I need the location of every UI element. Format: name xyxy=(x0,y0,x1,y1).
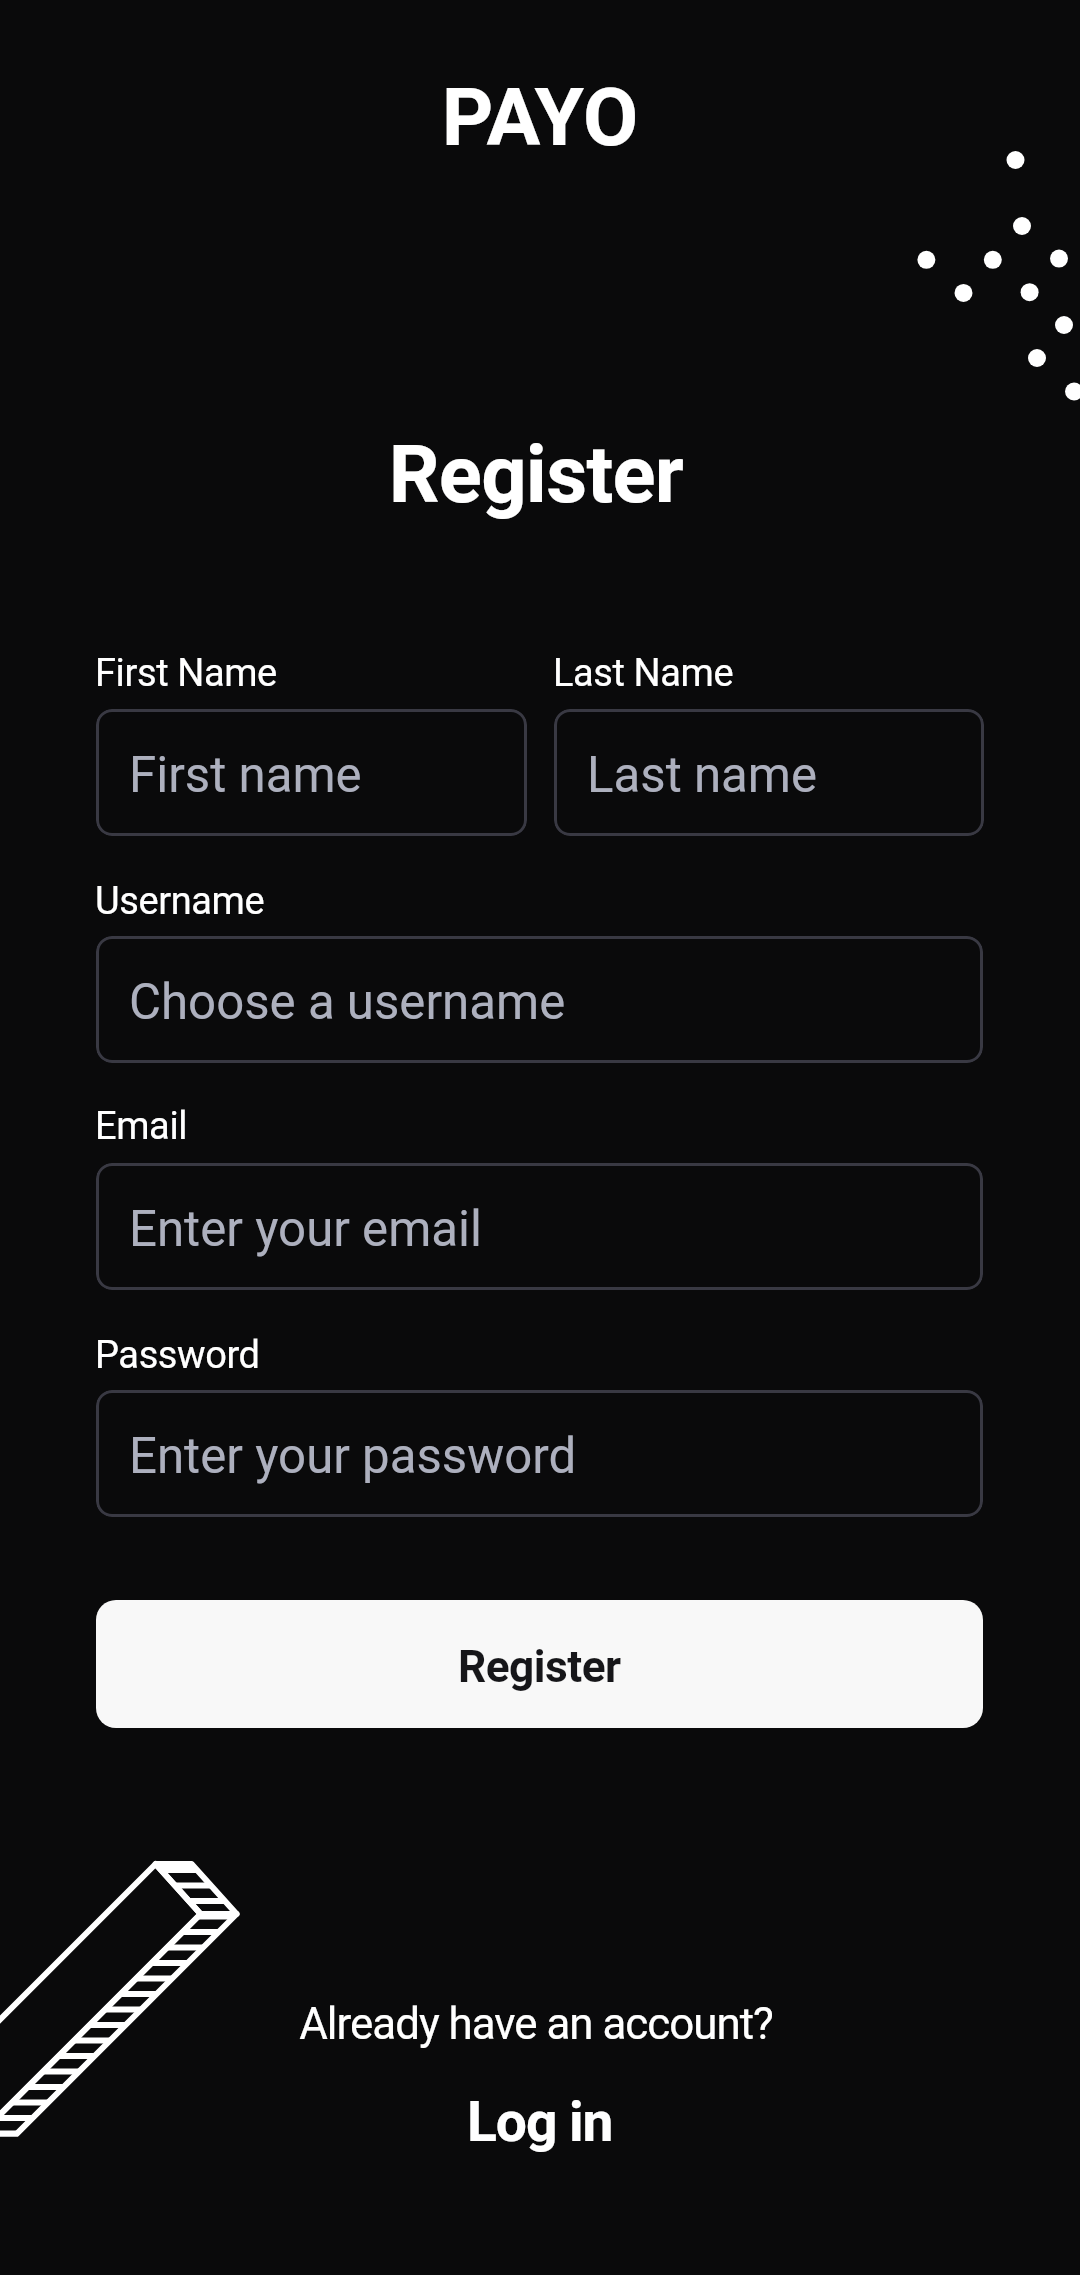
staticText: Enter your password xyxy=(129,1427,577,1485)
staticText: Last Name xyxy=(553,651,734,696)
staticText: Already have an account? xyxy=(0,1998,1076,2049)
button[interactable]: Choose a username xyxy=(96,936,983,1063)
button[interactable]: Enter your password xyxy=(96,1390,983,1517)
staticText: Last name xyxy=(587,746,818,804)
staticText: First name xyxy=(129,746,362,804)
staticText: Register xyxy=(0,428,1076,521)
staticText: Register xyxy=(458,1641,621,1693)
staticText: Choose a username xyxy=(129,973,566,1031)
button[interactable]: Log in xyxy=(441,2076,639,2169)
button[interactable]: Register xyxy=(96,1600,983,1728)
staticText: Password xyxy=(95,1333,260,1378)
staticText: PAYO xyxy=(0,71,1080,165)
button[interactable]: Last name xyxy=(554,709,984,836)
staticText: First Name xyxy=(95,651,277,696)
button[interactable]: Enter your email xyxy=(96,1163,983,1290)
staticText: Email xyxy=(95,1104,188,1149)
staticText: Enter your email xyxy=(129,1200,483,1258)
staticText: Log in xyxy=(467,2090,613,2155)
button[interactable]: First name xyxy=(96,709,527,836)
staticText: Username xyxy=(95,879,265,924)
